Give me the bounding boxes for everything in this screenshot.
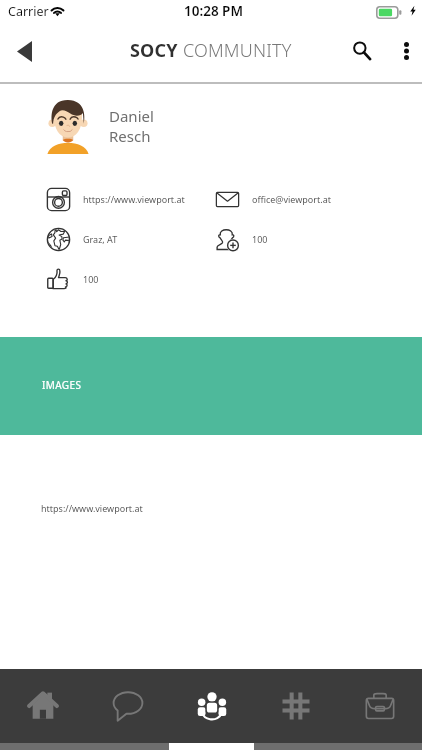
button[interactable]: IMAGES	[0, 337, 422, 435]
button[interactable]: Messages	[85, 669, 170, 743]
staticText: 100	[83, 273, 99, 285]
other: Email	[215, 187, 240, 212]
button[interactable]: Likes	[46, 266, 206, 292]
button[interactable]: Instagram	[46, 186, 206, 212]
button[interactable]: Followers	[215, 226, 375, 252]
staticText: office@viewport.at	[252, 193, 331, 205]
button[interactable]: Community	[170, 669, 254, 743]
staticText: IMAGES	[42, 378, 82, 392]
staticText: Graz, AT	[83, 233, 118, 245]
staticText: 10:28 PM	[184, 2, 243, 20]
button[interactable]: More options	[388, 24, 422, 78]
button[interactable]: Home	[0, 669, 85, 743]
button[interactable]: Jobs	[338, 669, 422, 743]
staticText: Carrier	[8, 3, 49, 20]
button[interactable]: Search	[339, 24, 385, 78]
other: Location	[46, 227, 71, 252]
staticText: Resch	[109, 126, 151, 146]
staticText: https://www.viewport.at	[83, 193, 185, 205]
button[interactable]: Back	[1, 24, 47, 78]
staticText: SOCY	[130, 38, 178, 63]
button[interactable]: https://www.viewport.at	[41, 502, 143, 514]
button[interactable]: Email	[215, 186, 375, 212]
staticText: COMMUNITY	[178, 38, 292, 63]
staticText: Daniel	[109, 106, 154, 126]
staticText: 100	[252, 233, 268, 245]
button[interactable]: Location	[46, 226, 206, 252]
button[interactable]: Tags	[254, 669, 338, 743]
other: Instagram	[46, 187, 71, 212]
other: Likes	[46, 267, 71, 292]
other: Followers	[215, 227, 240, 252]
